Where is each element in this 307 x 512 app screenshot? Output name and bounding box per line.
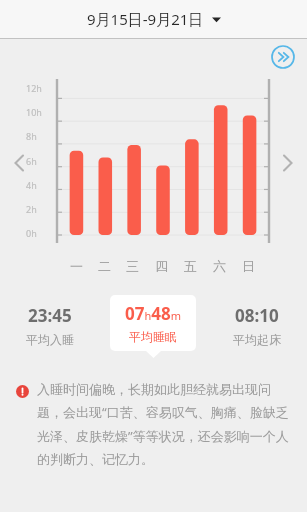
staticText: 10h: [26, 106, 42, 118]
button[interactable]: 9月15日-9月21日: [77, 4, 231, 34]
staticText: 日: [242, 258, 255, 274]
staticText: 平均起床: [233, 332, 281, 347]
staticText: 三: [126, 258, 139, 274]
button[interactable]: 07h48m: [110, 295, 196, 358]
staticText: 平均入睡: [26, 332, 74, 347]
staticText: 6h: [26, 155, 37, 167]
button[interactable]: 23:45: [0, 295, 100, 347]
staticText: 入睡时间偏晚，长期如此胆经就易出现问题，会出现“口苦、容易叹气、胸痛、脸缺乏光泽…: [37, 381, 289, 468]
staticText: 五: [184, 258, 197, 274]
staticText: 0h: [26, 227, 37, 239]
staticText: 2h: [26, 203, 37, 215]
staticText: 12h: [26, 82, 42, 94]
staticText: 8h: [26, 130, 37, 142]
staticText: 六: [213, 258, 226, 274]
staticText: 平均睡眠: [129, 329, 177, 344]
button[interactable]: Previous week: [6, 150, 32, 176]
staticText: 23:45: [28, 304, 72, 327]
button[interactable]: 08:10: [206, 295, 307, 347]
staticText: 四: [155, 258, 168, 274]
staticText: 07h48m: [125, 302, 181, 325]
button[interactable]: Next week: [275, 150, 301, 176]
staticText: 4h: [26, 179, 37, 191]
staticText: 一: [70, 258, 83, 274]
button[interactable]: Next: [271, 45, 295, 69]
staticText: 9月15日-9月21日: [87, 9, 204, 29]
staticText: 08:10: [235, 304, 279, 327]
staticText: 二: [98, 258, 111, 274]
